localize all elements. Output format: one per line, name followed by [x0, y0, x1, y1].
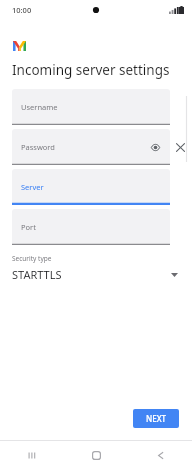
button[interactable]: Show password: [147, 139, 163, 155]
staticText: Server: [21, 182, 44, 192]
staticText: Security type: [12, 254, 52, 263]
staticText: Username: [21, 102, 58, 112]
staticText: Incoming server settings: [12, 61, 170, 79]
button[interactable]: Back: [128, 441, 192, 469]
button[interactable]: Clear: [170, 137, 190, 157]
staticText: 10:00: [12, 5, 32, 15]
button[interactable]: Recent apps: [0, 441, 64, 469]
button[interactable]: Password: [12, 129, 170, 165]
button[interactable]: Port: [12, 209, 170, 245]
button[interactable]: Username: [12, 89, 170, 125]
staticText: STARTTLS: [12, 267, 62, 282]
staticText: Port: [21, 222, 36, 232]
button[interactable]: NEXT: [133, 409, 179, 428]
button[interactable]: Home: [64, 441, 128, 469]
staticText: NEXT: [146, 413, 167, 424]
button[interactable]: Server: [12, 169, 170, 205]
button[interactable]: Security type: [0, 254, 192, 282]
staticText: Password: [21, 142, 55, 152]
